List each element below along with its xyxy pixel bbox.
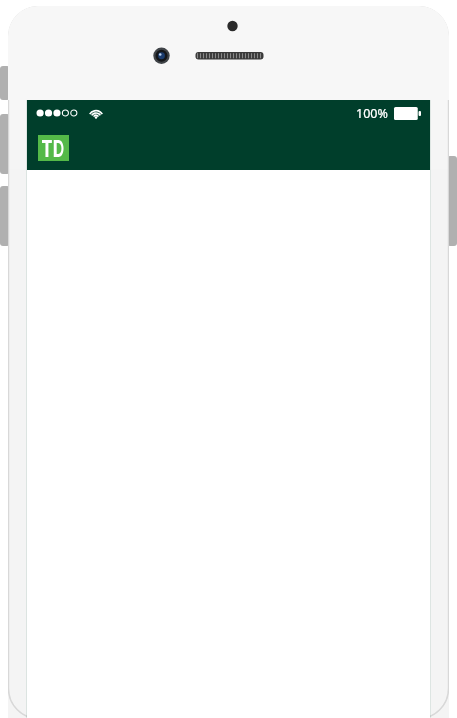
- button[interactable]: TD Home: [38, 135, 69, 161]
- staticText: 100%: [356, 105, 388, 122]
